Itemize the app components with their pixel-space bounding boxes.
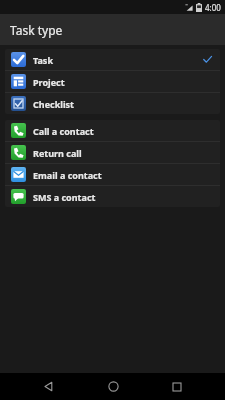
staticText: Call a contact [33, 125, 214, 137]
button[interactable]: Recent apps [160, 373, 194, 400]
button[interactable]: Back [31, 373, 65, 400]
button[interactable]: Project [5, 71, 220, 92]
staticText: Checklist [33, 98, 214, 110]
button[interactable]: Email a contact [5, 164, 220, 185]
button[interactable]: Task [5, 49, 220, 70]
button[interactable]: Call a contact [5, 120, 220, 141]
staticText: Email a contact [33, 169, 214, 181]
button[interactable]: Home [96, 373, 130, 400]
staticText: 4:00 [205, 2, 221, 13]
staticText: Task type [10, 22, 63, 38]
button[interactable]: Checklist [5, 93, 220, 114]
staticText: SMS a contact [33, 191, 214, 203]
staticText: Return call [33, 147, 214, 159]
staticText: Project [33, 76, 214, 88]
button[interactable]: SMS a contact [5, 186, 220, 207]
staticText: Task [33, 54, 203, 66]
button[interactable]: Return call [5, 142, 220, 163]
